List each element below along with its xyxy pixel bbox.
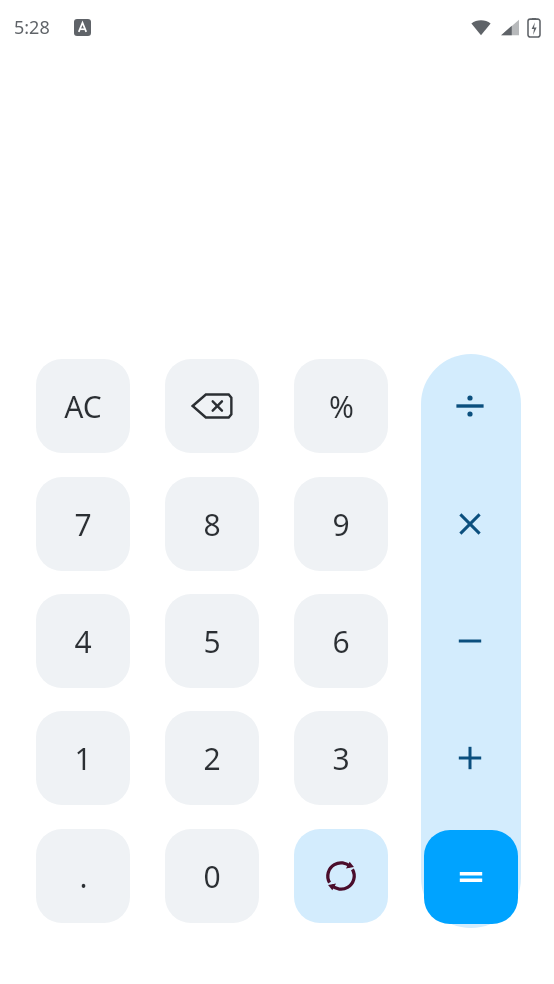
staticText: AC [64, 386, 102, 427]
button[interactable]: . [36, 829, 130, 923]
button[interactable]: 1 [36, 711, 130, 805]
staticText: 3 [332, 738, 350, 779]
button[interactable]: 8 [165, 477, 259, 571]
button[interactable]: AC [36, 359, 130, 453]
button[interactable]: Subtract [423, 594, 517, 688]
staticText: . [79, 856, 88, 897]
button[interactable]: Backspace [165, 359, 259, 453]
button[interactable]: Toggle sign / rotate [294, 829, 388, 923]
button[interactable]: Multiply [423, 477, 517, 571]
staticText: 6 [332, 621, 350, 662]
staticText: 5:28 [14, 15, 50, 40]
button[interactable]: Equals [424, 830, 518, 924]
button[interactable]: 7 [36, 477, 130, 571]
button[interactable]: Divide [423, 359, 517, 453]
staticText: 2 [203, 738, 221, 779]
button[interactable]: Add [423, 711, 517, 805]
staticText: % [329, 386, 354, 427]
staticText: 9 [332, 504, 350, 545]
staticText: 0 [203, 856, 221, 897]
button[interactable]: % [294, 359, 388, 453]
button[interactable]: 0 [165, 829, 259, 923]
button[interactable]: 2 [165, 711, 259, 805]
staticText: 7 [74, 504, 92, 545]
staticText: 1 [74, 738, 92, 779]
staticText: 8 [203, 504, 221, 545]
button[interactable]: 9 [294, 477, 388, 571]
staticText: 4 [74, 621, 92, 662]
button[interactable]: 3 [294, 711, 388, 805]
button[interactable]: 5 [165, 594, 259, 688]
staticText: 5 [203, 621, 221, 662]
button[interactable]: 6 [294, 594, 388, 688]
button[interactable]: 4 [36, 594, 130, 688]
